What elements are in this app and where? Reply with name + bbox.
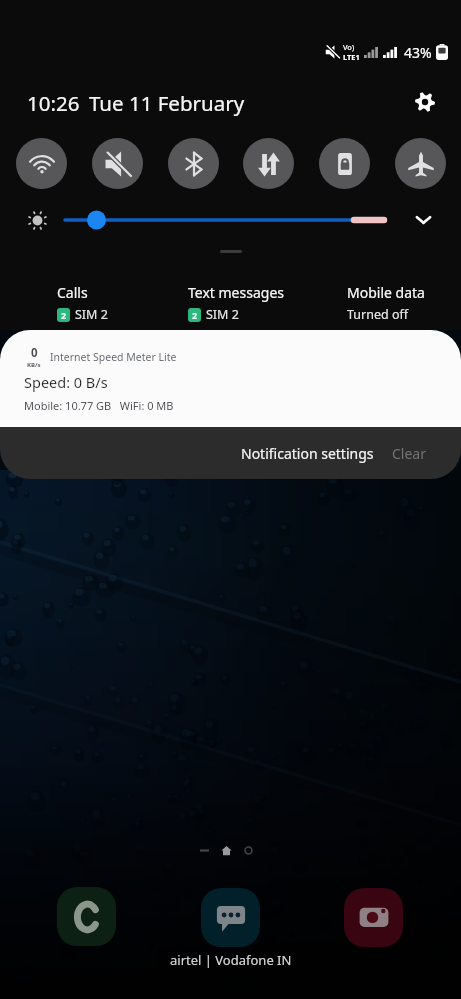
staticText: Notification settings: [241, 444, 374, 463]
button[interactable]: Settings: [404, 81, 446, 123]
staticText: Internet Speed Meter Lite: [50, 350, 177, 364]
button[interactable]: Wi-Fi: [16, 138, 67, 189]
button[interactable]: Mobile data: [243, 138, 294, 189]
button[interactable]: Bluetooth: [168, 138, 219, 189]
staticText: airtel | Vodafone IN: [170, 951, 292, 969]
button[interactable]: Sound: [92, 138, 143, 189]
button[interactable]: Expand quick settings: [404, 206, 442, 234]
button[interactable]: 0: [0, 330, 461, 427]
button[interactable]: Text messages: [188, 283, 284, 323]
staticText: Calls: [57, 283, 88, 302]
staticText: Turned off: [347, 306, 409, 323]
staticText: Vo): [343, 42, 355, 52]
button[interactable]: Clear: [389, 432, 429, 475]
button[interactable]: Screen lock: [319, 138, 370, 189]
button[interactable]: Messages: [201, 888, 260, 947]
button[interactable]: Camera: [344, 888, 403, 947]
staticText: Tue 11 February: [89, 89, 245, 117]
button[interactable]: Calls: [57, 283, 108, 323]
staticText: 0: [31, 345, 38, 361]
staticText: LTE1: [343, 52, 360, 62]
staticText: SIM 2: [206, 306, 239, 323]
staticText: Speed: 0 B/s: [24, 372, 108, 392]
button[interactable]: Flight mode: [395, 138, 446, 189]
staticText: Mobile: 10.77 GB WiFi: 0 MB: [24, 398, 174, 413]
button[interactable]: Notification settings: [238, 432, 377, 475]
staticText: Text messages: [188, 283, 284, 302]
staticText: 2: [61, 309, 67, 321]
staticText: Clear: [392, 444, 426, 463]
staticText: 10:26: [27, 89, 80, 117]
button[interactable]: Mobile data: [347, 283, 425, 323]
staticText: SIM 2: [75, 306, 108, 323]
staticText: KB/s: [27, 361, 41, 369]
staticText: Mobile data: [347, 283, 425, 302]
button[interactable]: Brightness: [55, 206, 395, 234]
staticText: 2: [192, 309, 198, 321]
staticText: 43%: [404, 43, 432, 62]
button[interactable]: Phone: [57, 887, 116, 946]
